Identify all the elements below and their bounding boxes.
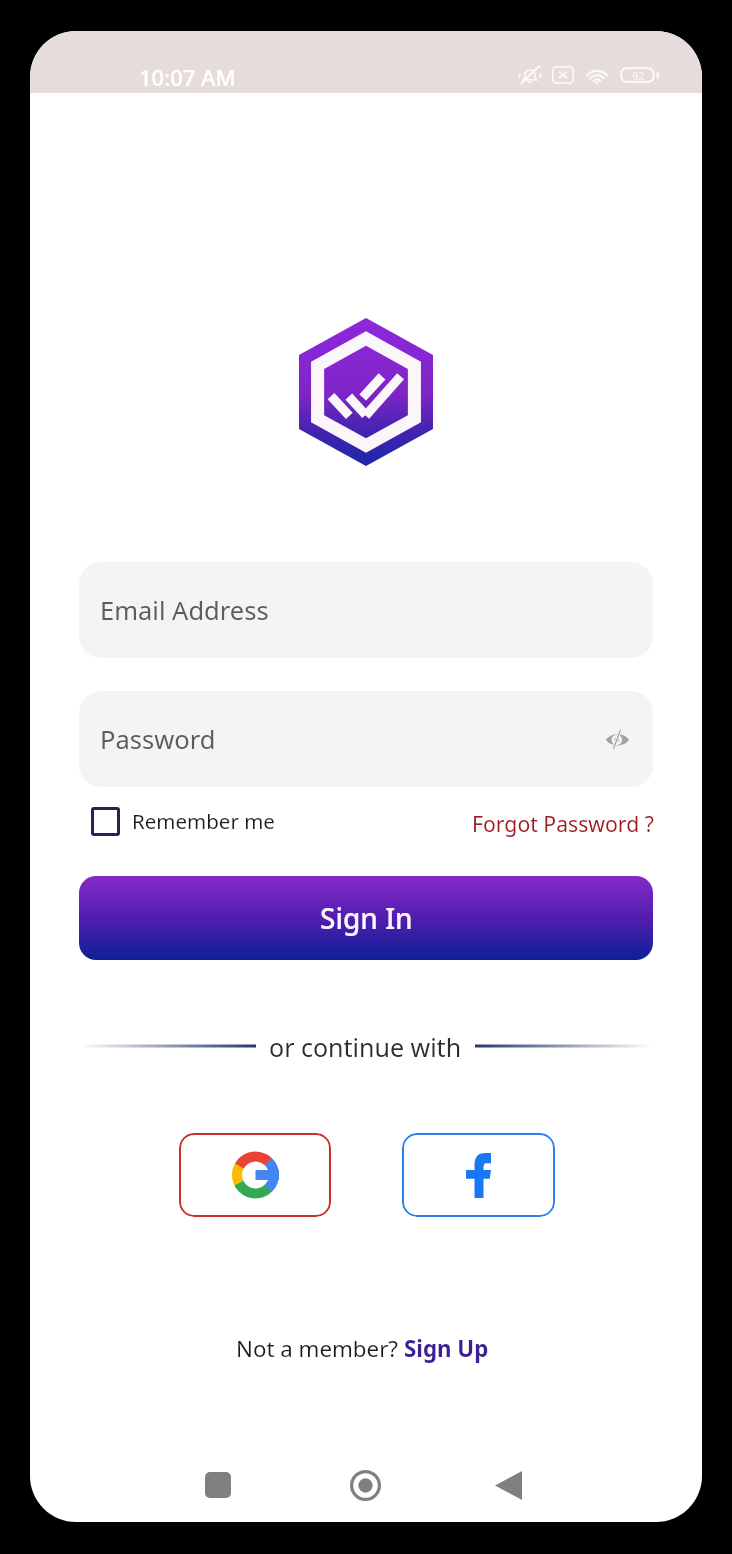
staticText: Email Address [100, 593, 269, 628]
button[interactable]: Show password [595, 717, 639, 761]
staticText: Remember me [132, 807, 275, 835]
staticText: Password [100, 722, 216, 757]
staticText: or continue with [269, 1030, 462, 1062]
button[interactable]: Forgot Password ? [472, 803, 654, 843]
button[interactable]: Not a member? [236, 1328, 489, 1368]
staticText: Not a member? [236, 1333, 404, 1363]
staticText: Sign In [320, 899, 413, 937]
staticText: 10:07 AM [139, 62, 236, 92]
button[interactable]: Home [337, 1455, 393, 1515]
button[interactable]: Recent apps [190, 1455, 246, 1515]
staticText: 92 [632, 68, 645, 83]
staticText: Sign Up [404, 1333, 489, 1363]
button[interactable]: Back [480, 1455, 536, 1515]
button[interactable]: Email Address [79, 562, 653, 658]
button[interactable]: Remember me [91, 801, 275, 841]
button[interactable]: Password [79, 691, 653, 787]
button[interactable]: Sign In [79, 876, 653, 960]
button[interactable]: Sign in with Google [179, 1133, 331, 1217]
staticText: Forgot Password ? [472, 809, 654, 838]
button[interactable]: Sign in with Facebook [402, 1133, 555, 1217]
